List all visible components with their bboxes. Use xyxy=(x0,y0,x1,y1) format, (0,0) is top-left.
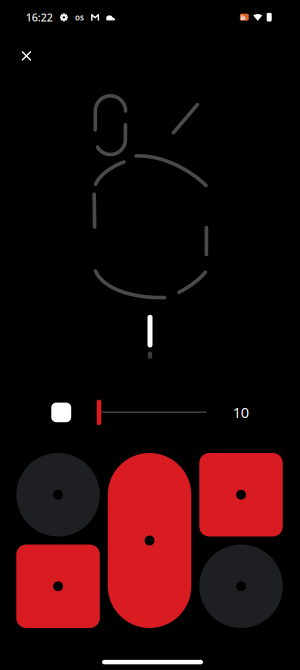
staticText: os xyxy=(75,12,84,23)
button[interactable]: Brush size xyxy=(97,399,206,425)
button[interactable]: Close xyxy=(18,48,34,64)
staticText: 10 xyxy=(233,403,249,422)
button[interactable]: Tool 1 xyxy=(16,453,100,536)
button[interactable]: Colour xyxy=(51,403,71,422)
button[interactable]: Tool 4 xyxy=(199,453,283,536)
staticText: 16:22 xyxy=(26,10,53,24)
button[interactable]: Tool 3 xyxy=(108,453,191,628)
button[interactable]: Tool 5 xyxy=(199,544,283,628)
button[interactable]: Tool 2 xyxy=(16,544,100,628)
